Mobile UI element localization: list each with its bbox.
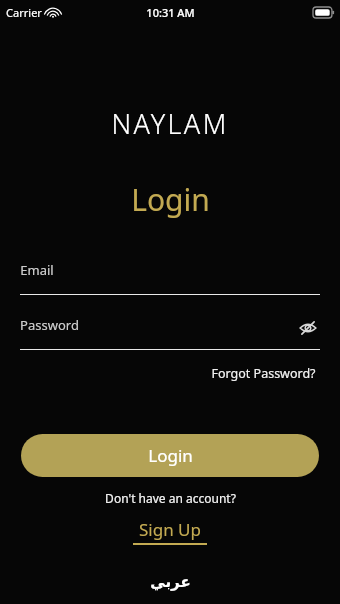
button[interactable]: Sign Up — [133, 518, 207, 545]
staticText: Login — [131, 179, 210, 220]
staticText: Sign Up — [139, 518, 201, 541]
staticText: Don't have an account? — [105, 490, 236, 506]
button[interactable]: Login — [21, 434, 319, 477]
staticText: Login — [148, 444, 193, 467]
button[interactable]: Password — [20, 316, 79, 334]
button[interactable]: Forgot Password? — [207, 361, 320, 386]
staticText: 10:31 AM — [146, 5, 195, 20]
staticText: Forgot Password? — [211, 365, 316, 382]
button[interactable]: Email — [20, 261, 320, 295]
button[interactable]: Show password — [296, 316, 320, 340]
button[interactable]: عربي — [146, 569, 195, 594]
staticText: NAYLAM — [111, 105, 229, 142]
staticText: عربي — [150, 573, 191, 590]
staticText: Email — [20, 261, 54, 279]
staticText: Carrier — [6, 5, 42, 20]
